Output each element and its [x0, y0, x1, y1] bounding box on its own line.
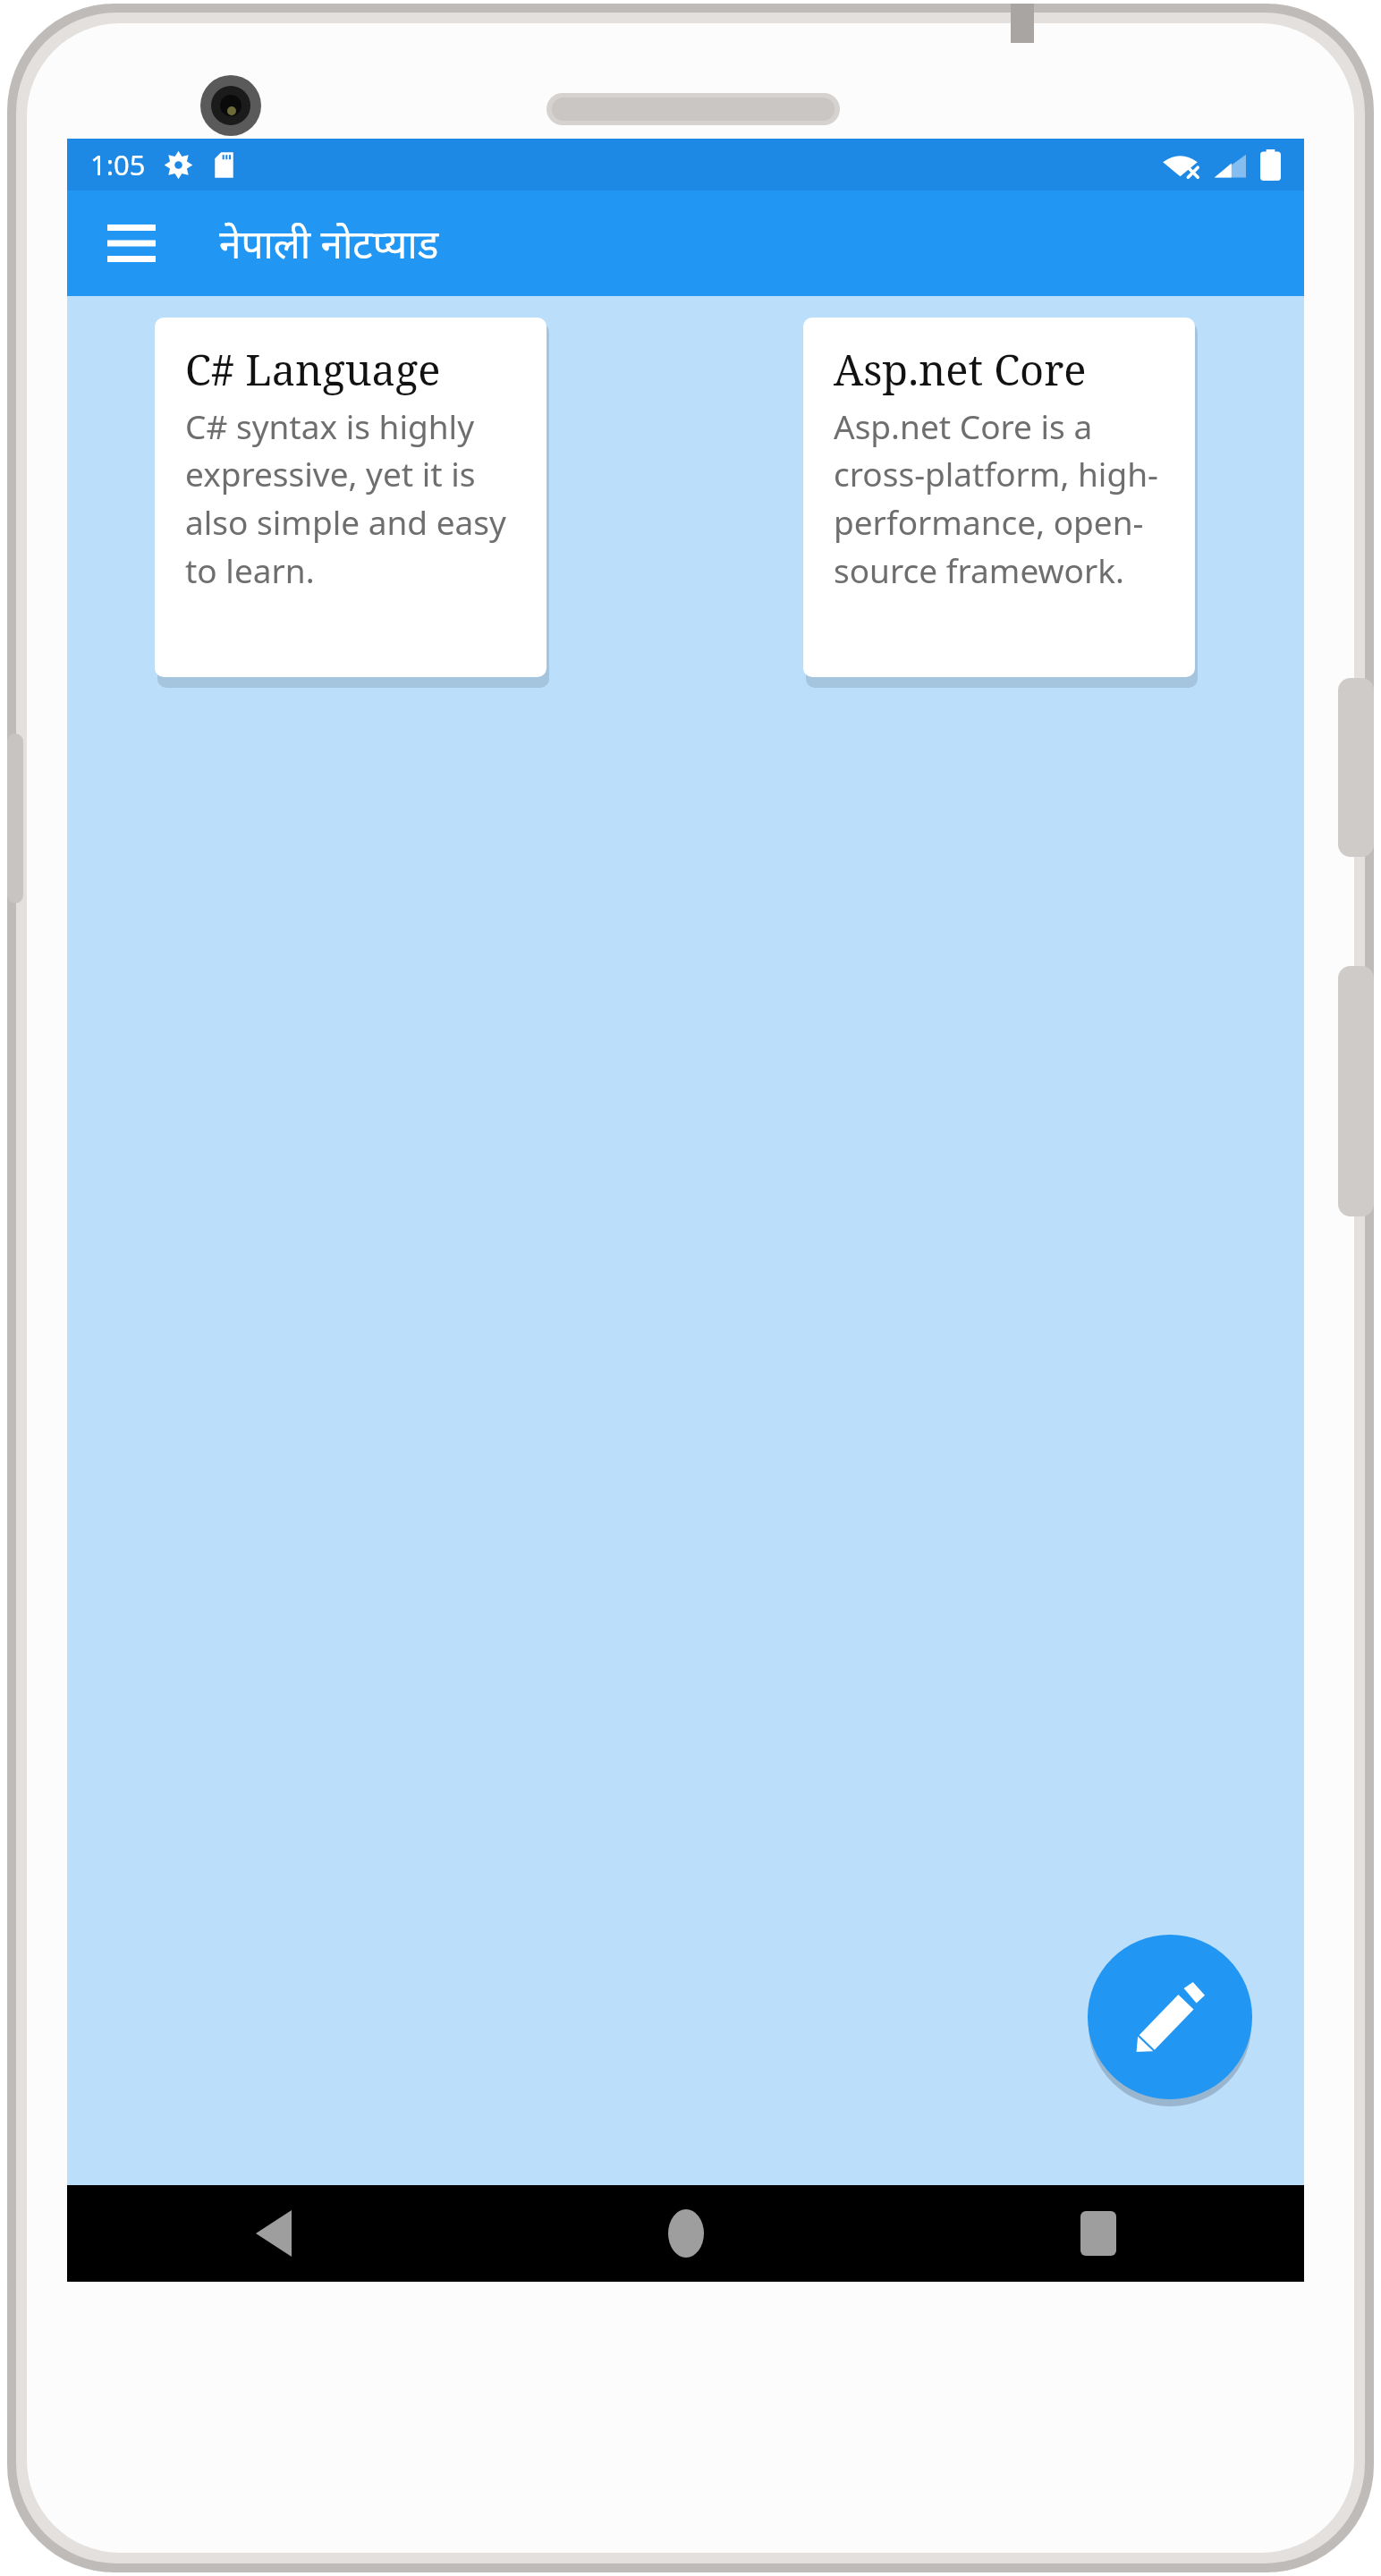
staticText: 1:05 — [90, 146, 146, 183]
button[interactable]: Open navigation drawer — [92, 204, 171, 283]
staticText: Asp.net Core is a cross-platform, high-p… — [834, 403, 1182, 593]
button[interactable]: Back — [67, 2185, 479, 2282]
staticText: C# syntax is highly expressive, yet it i… — [185, 403, 534, 593]
button[interactable]: Asp.net Core — [803, 318, 1195, 677]
button[interactable]: Recent apps — [892, 2185, 1304, 2282]
staticText: C# Language — [185, 341, 441, 398]
button[interactable]: Home — [479, 2185, 892, 2282]
staticText: नेपाली नोटप्याड — [219, 216, 439, 270]
staticText: Asp.net Core — [834, 341, 1087, 398]
button[interactable]: C# Language — [155, 318, 546, 677]
button[interactable]: Create new note — [1088, 1935, 1252, 2099]
